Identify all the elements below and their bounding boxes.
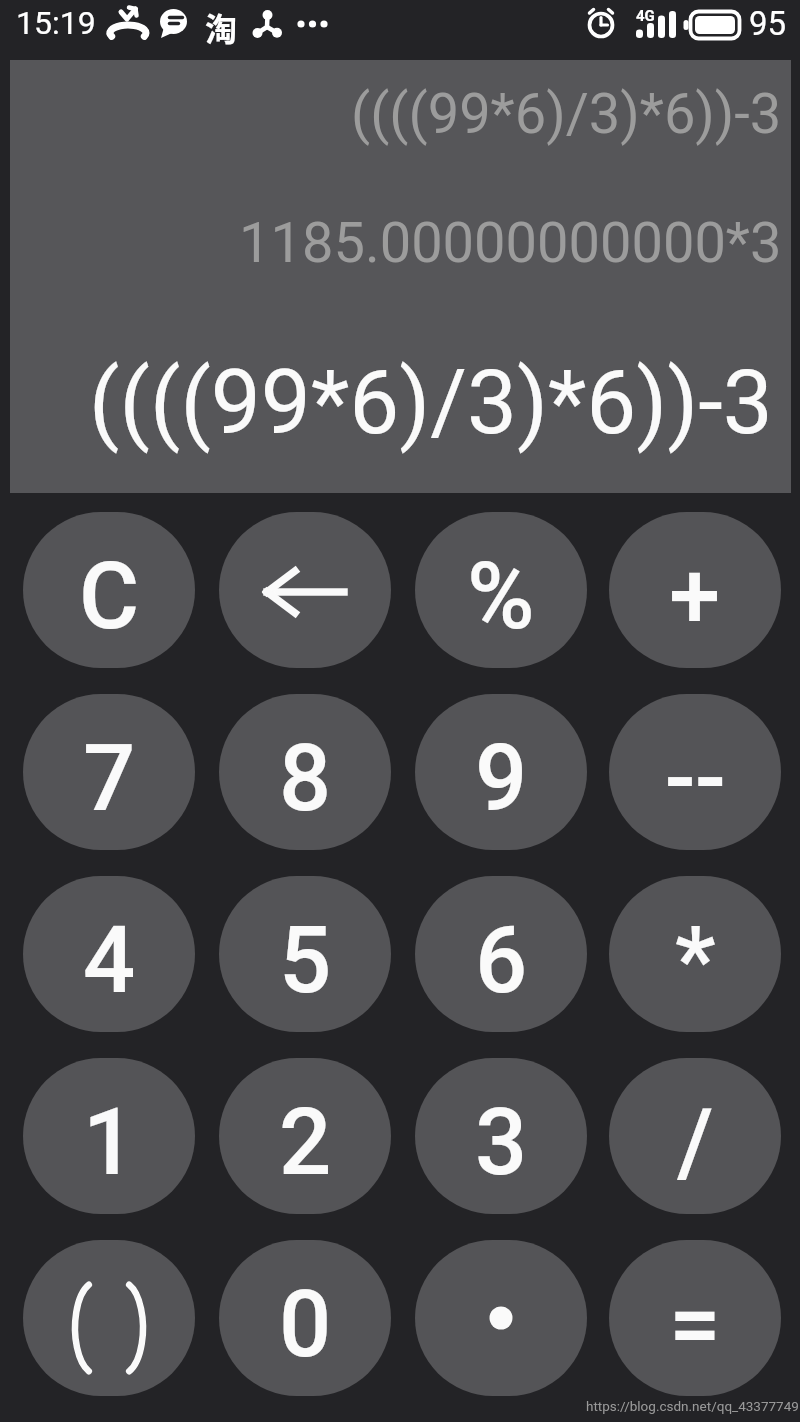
- staticText: 15:19: [16, 4, 96, 42]
- staticText: 4G: [636, 7, 655, 25]
- staticText: --: [665, 725, 726, 833]
- staticText: https://blog.csdn.net/qq_43377749: [586, 1398, 799, 1414]
- staticText: =: [669, 1271, 721, 1379]
- staticText: /: [677, 1089, 714, 1197]
- button[interactable]: 9: [415, 694, 587, 850]
- button[interactable]: 0: [219, 1240, 391, 1396]
- staticText: 4: [83, 907, 136, 1015]
- button[interactable]: +: [609, 512, 781, 668]
- button[interactable]: C: [23, 512, 195, 668]
- staticText: 5: [279, 907, 332, 1015]
- button[interactable]: *: [609, 876, 781, 1032]
- button[interactable]: /: [609, 1058, 781, 1214]
- staticText: %: [467, 543, 535, 651]
- button[interactable]: 1: [23, 1058, 195, 1214]
- staticText: 淘: [205, 4, 238, 50]
- button[interactable]: =: [609, 1240, 781, 1396]
- staticText: *: [675, 907, 716, 1015]
- staticText: 0: [279, 1271, 332, 1379]
- staticText: 2: [279, 1089, 332, 1197]
- button[interactable]: 6: [415, 876, 587, 1032]
- button[interactable]: --: [609, 694, 781, 850]
- button[interactable]: [23, 1240, 195, 1396]
- staticText: ((((99*6)/3)*6))-3: [89, 350, 773, 454]
- button[interactable]: [415, 1240, 587, 1396]
- staticText: C: [79, 543, 140, 651]
- button[interactable]: 8: [219, 694, 391, 850]
- button[interactable]: %: [415, 512, 587, 668]
- button[interactable]: 3: [415, 1058, 587, 1214]
- staticText: 1: [83, 1089, 136, 1197]
- button[interactable]: 4: [23, 876, 195, 1032]
- staticText: 3: [475, 1089, 528, 1197]
- staticText: 1185.00000000000*3: [239, 210, 782, 276]
- button[interactable]: 2: [219, 1058, 391, 1214]
- staticText: 95: [749, 4, 787, 43]
- button[interactable]: [219, 512, 391, 668]
- staticText: 7: [83, 725, 136, 833]
- staticText: 6: [475, 907, 528, 1015]
- staticText: 8: [279, 725, 332, 833]
- staticText: ((((99*6)/3)*6))-3: [351, 81, 782, 147]
- staticText: +: [669, 543, 721, 651]
- button[interactable]: 5: [219, 876, 391, 1032]
- staticText: 9: [475, 725, 528, 833]
- button[interactable]: 7: [23, 694, 195, 850]
